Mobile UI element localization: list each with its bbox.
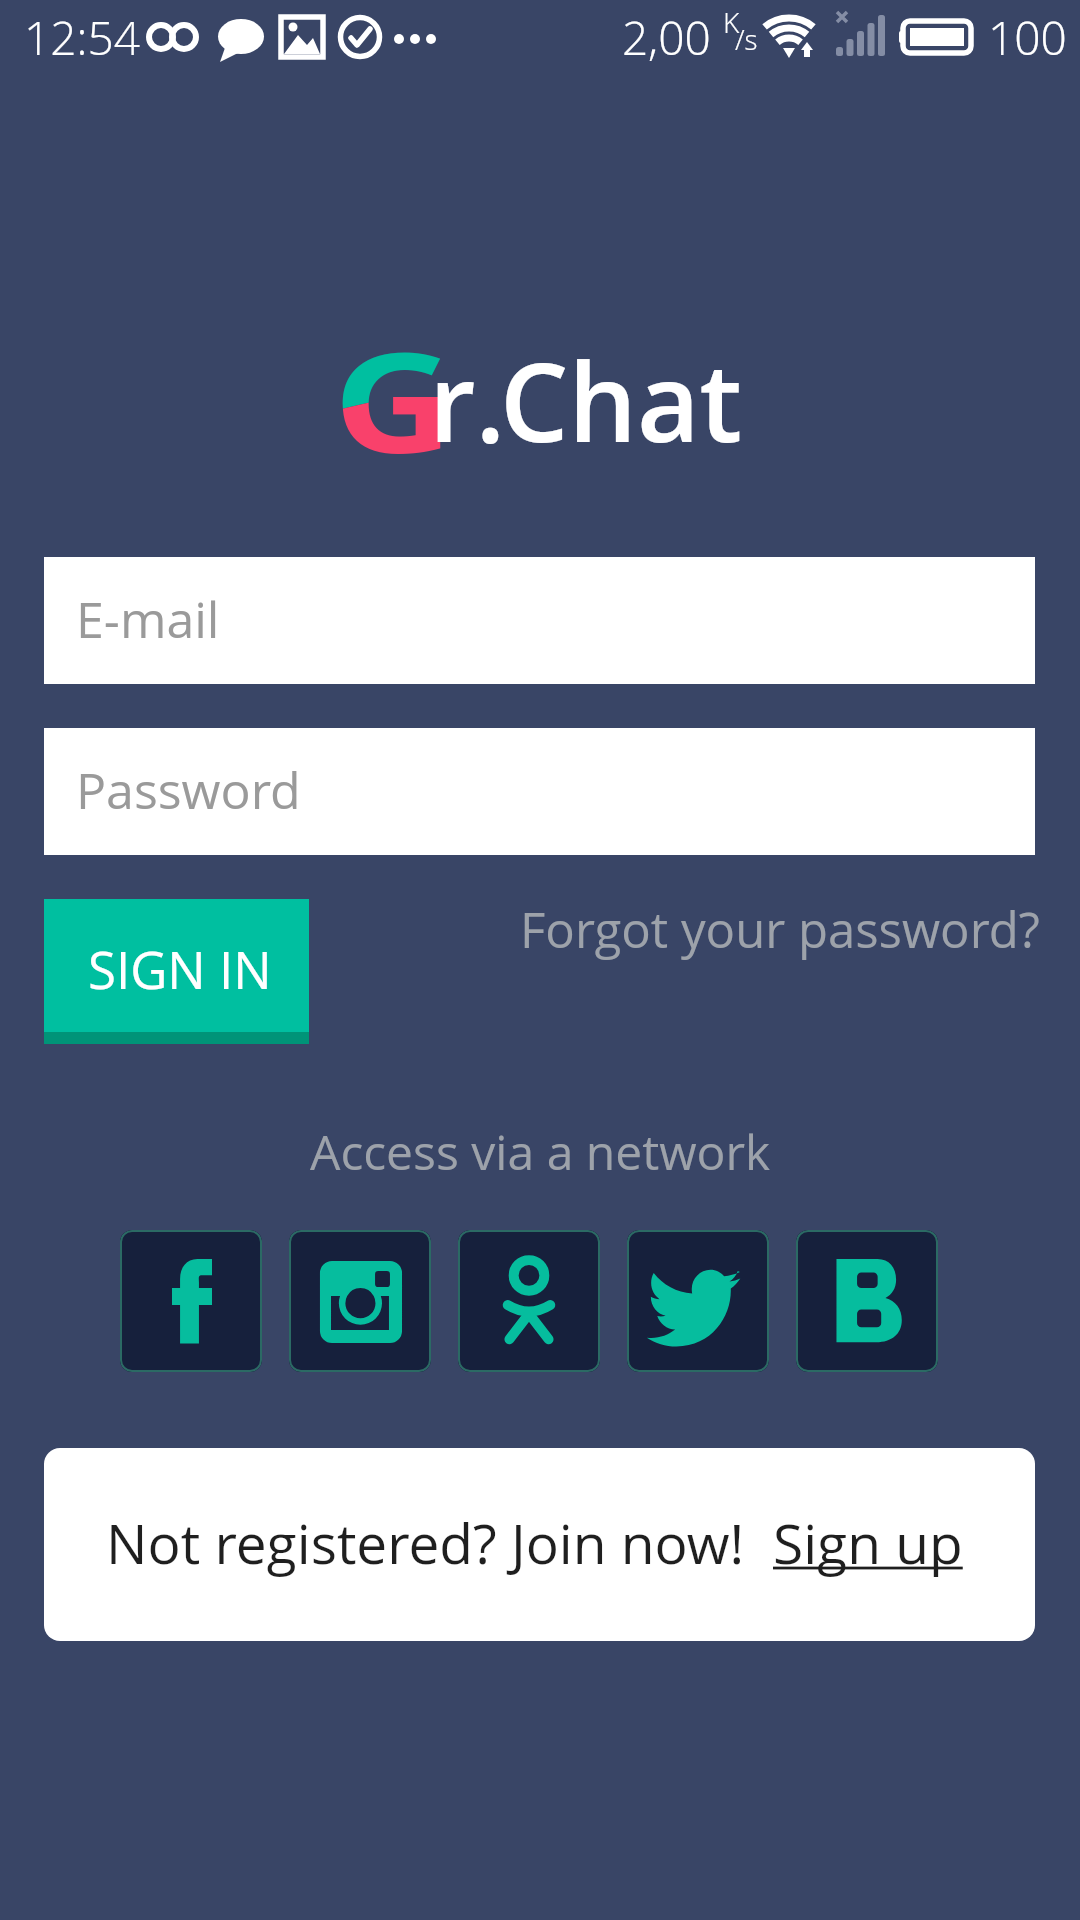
staticText: 100	[988, 6, 1067, 69]
button[interactable]: Password	[44, 728, 1035, 855]
button[interactable]: Sign in with VKontakte	[796, 1230, 938, 1372]
staticText: Forgot your password?	[520, 896, 1040, 963]
staticText: r.Chat	[429, 327, 742, 474]
staticText: SIGN IN	[88, 934, 272, 1003]
staticText: G	[333, 305, 454, 493]
staticText: Not registered? Join now!	[106, 1505, 773, 1580]
staticText: /s	[735, 20, 758, 58]
button[interactable]: Sign in with Instagram	[289, 1230, 431, 1372]
staticText: G	[333, 305, 454, 493]
button[interactable]: E-mail	[44, 557, 1035, 684]
button[interactable]: Sign in with Facebook	[120, 1230, 262, 1372]
staticText: 12:54	[24, 6, 140, 69]
staticText: 2,00	[622, 6, 711, 69]
staticText: Sign up	[773, 1505, 963, 1580]
button[interactable]: Sign in with Odnoklassniki	[458, 1230, 600, 1372]
staticText: K	[723, 3, 740, 41]
button[interactable]: Sign in with Twitter	[627, 1230, 769, 1372]
button[interactable]: SIGN IN	[44, 899, 309, 1044]
staticText: Access via a network	[310, 1119, 771, 1184]
staticText: Password	[76, 756, 301, 824]
button[interactable]: Forgot your password?	[516, 880, 1044, 979]
staticText: E-mail	[76, 585, 220, 653]
button[interactable]: Not registered? Join now!	[44, 1448, 1035, 1641]
